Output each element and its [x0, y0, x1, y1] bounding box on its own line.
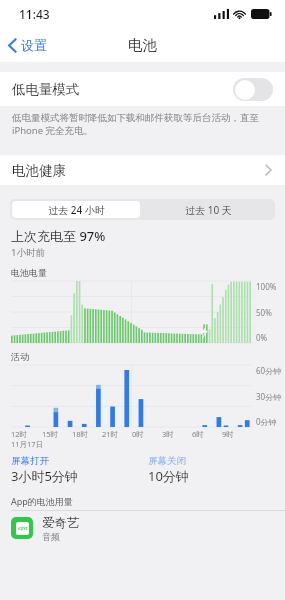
staticText: 电池	[128, 36, 157, 54]
staticText: 11:43	[19, 6, 50, 22]
staticText: 上次充电至 97%	[11, 227, 106, 245]
staticText: 21时	[102, 429, 119, 439]
button[interactable]: 设置	[0, 33, 55, 57]
staticText: 10分钟	[148, 467, 189, 485]
staticText: 50%	[256, 307, 272, 318]
staticText: 0分钟	[256, 416, 277, 427]
staticText: 12时	[11, 429, 28, 439]
staticText: 活动	[11, 351, 29, 362]
staticText: 音频	[42, 531, 60, 542]
staticText: 18时	[72, 429, 89, 439]
staticText: 屏幕打开	[11, 455, 49, 467]
staticText: iQIYI	[18, 526, 28, 531]
staticText: 30分钟	[256, 391, 282, 402]
staticText: 6时	[192, 429, 204, 439]
button[interactable]: 过去 10 天	[142, 199, 275, 220]
button[interactable]: iQIYI	[0, 511, 285, 545]
staticText: 电池健康	[12, 162, 66, 179]
button[interactable]: 过去 24 小时	[12, 201, 140, 218]
button[interactable]: 低电量模式开关	[233, 78, 273, 101]
staticText: 60分钟	[256, 365, 282, 376]
staticText: App的电池用量	[11, 495, 73, 507]
staticText: 1小时前	[11, 246, 45, 259]
staticText: 9时	[222, 429, 234, 439]
staticText: 11月17日	[11, 439, 44, 449]
staticText: 过去 10 天	[185, 203, 232, 217]
staticText: 电池电量	[11, 267, 47, 278]
staticText: 0%	[256, 332, 268, 343]
staticText: 15时	[42, 429, 59, 439]
staticText: 低电量模式将暂时降低如下载和邮件获取等后台活动，直至 iPhone 完全充电。	[12, 111, 271, 137]
staticText: 低电量模式	[12, 81, 80, 98]
staticText: 屏幕关闭	[148, 455, 186, 467]
staticText: 100%	[256, 281, 277, 292]
button[interactable]: 电池健康	[0, 155, 285, 185]
staticText: 0时	[132, 429, 144, 439]
staticText: 3时	[162, 429, 174, 439]
button[interactable]: 低电量模式	[0, 72, 285, 106]
staticText: 设置	[21, 37, 47, 53]
staticText: 3小时5分钟	[11, 467, 78, 485]
staticText: 过去 24 小时	[48, 203, 105, 217]
staticText: 爱奇艺	[42, 515, 80, 531]
